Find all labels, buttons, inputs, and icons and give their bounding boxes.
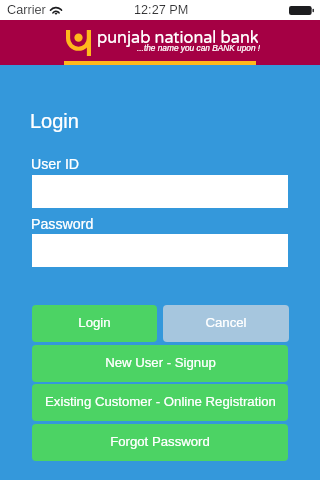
staticText: punjab national bank	[97, 28, 259, 48]
button[interactable]: New User - Signup	[32, 345, 288, 382]
button[interactable]: Existing Customer - Online Registration	[32, 384, 288, 421]
staticText: 12:27 PM	[134, 3, 189, 17]
button[interactable]: Forgot Password	[32, 424, 288, 461]
button[interactable]: Login	[32, 305, 157, 342]
staticText: Forgot Password	[110, 434, 210, 449]
staticText: New User - Signup	[105, 355, 216, 370]
other: Battery full	[289, 6, 314, 15]
button[interactable]: Cancel	[163, 305, 289, 342]
staticText: Carrier	[7, 3, 46, 17]
other: Wi-Fi signal	[50, 6, 62, 15]
staticText: ...the name you can BANK upon !	[137, 43, 261, 52]
staticText: Password	[31, 216, 94, 232]
staticText: User ID	[31, 156, 80, 172]
staticText: Cancel	[205, 315, 247, 330]
staticText: Login	[30, 110, 79, 132]
staticText: Login	[78, 315, 111, 330]
button[interactable]: punjab national bank	[0, 20, 320, 65]
staticText: Existing Customer - Online Registration	[45, 394, 276, 409]
